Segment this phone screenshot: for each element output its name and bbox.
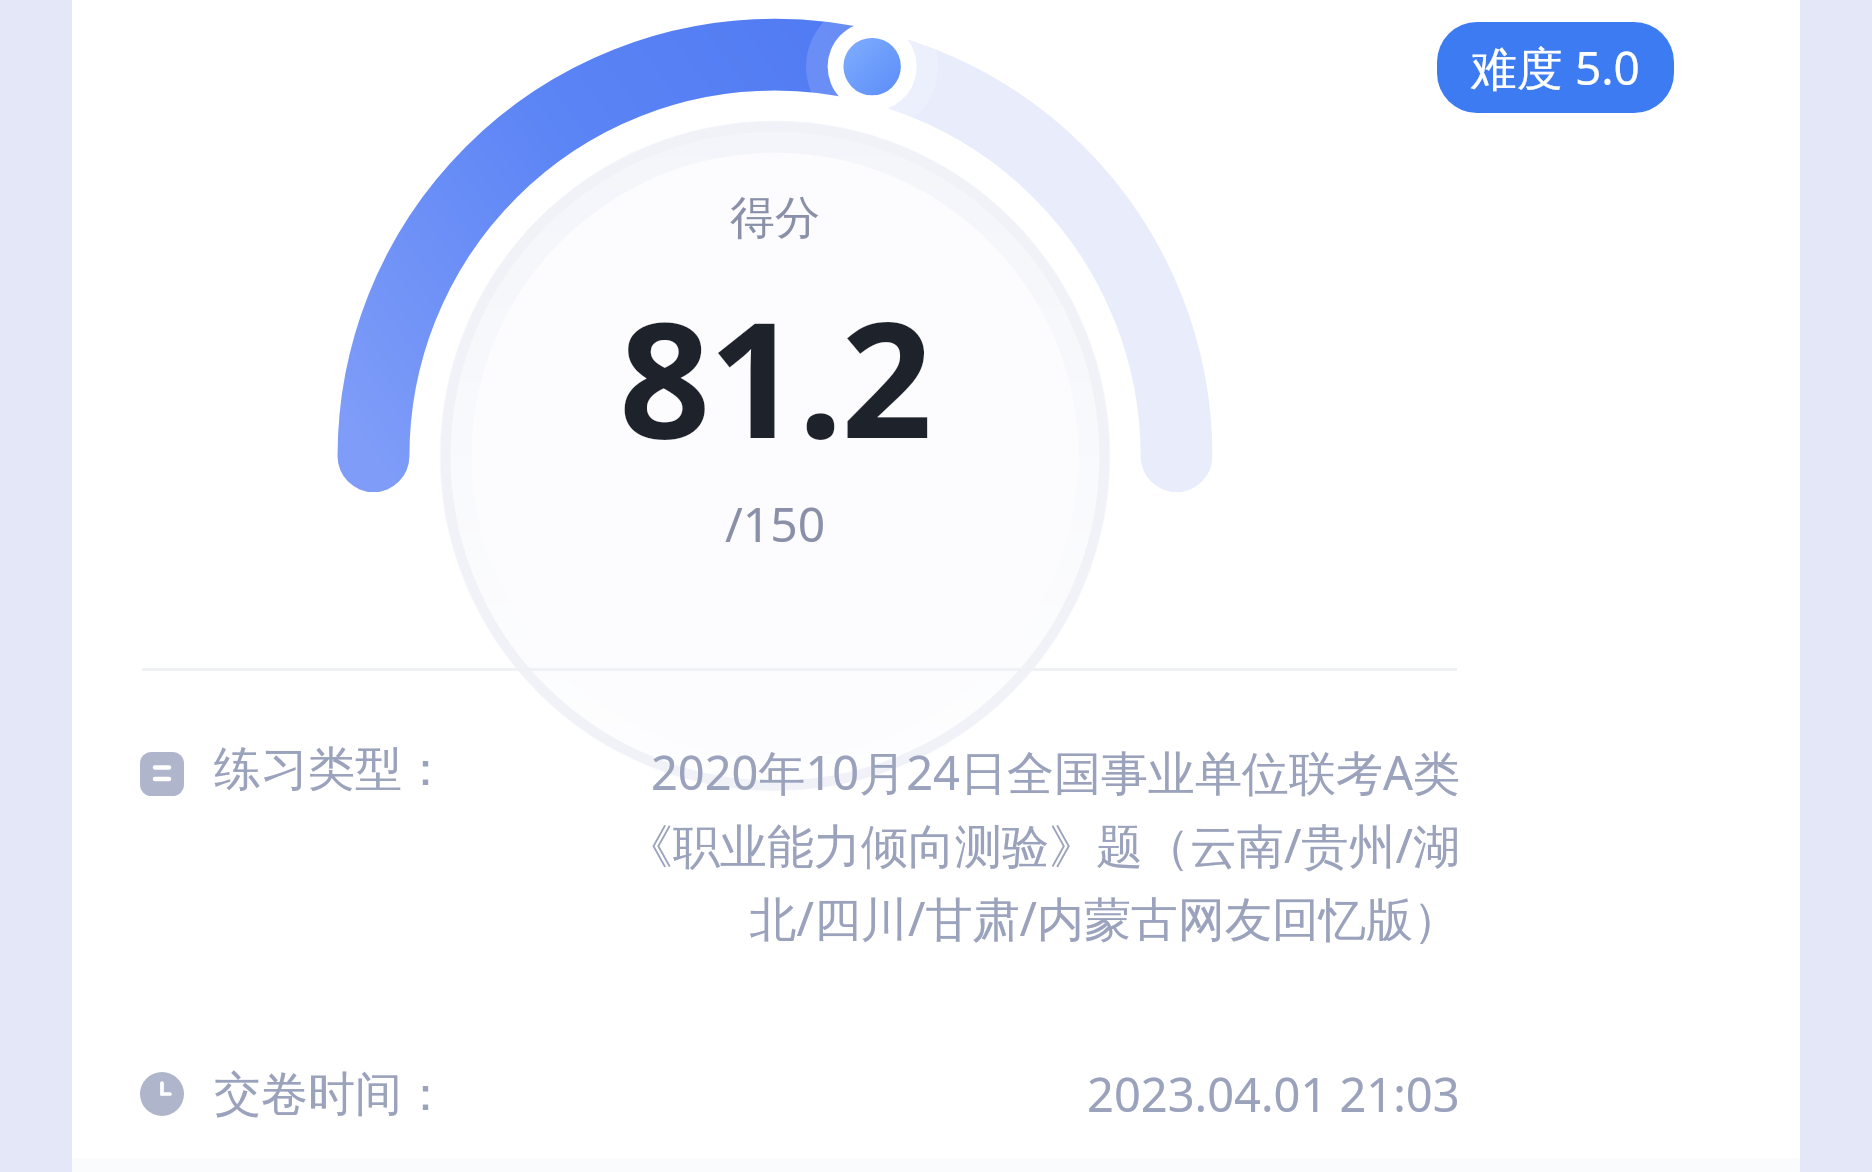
staticText: 练习类型： [214,740,449,799]
staticText: 交卷时间： [214,1065,449,1124]
button[interactable]: Practice type [140,740,1460,950]
staticText: 难度 5.0 [1471,36,1640,99]
button[interactable]: 难度 5.0 [1437,22,1674,113]
other: Practice type [140,752,184,796]
staticText: 得分 [730,190,820,247]
button[interactable]: Submit time [140,1062,1460,1126]
staticText: 2023.04.01 21:03 [1087,1062,1460,1126]
staticText: 2020年10月24日全国事业单位联考A类《职业能力倾向测验》题（云南/贵州/湖… [620,740,1460,950]
other: Submit time [140,1072,184,1116]
staticText: 81.2 [619,267,931,485]
staticText: /150 [725,491,826,556]
